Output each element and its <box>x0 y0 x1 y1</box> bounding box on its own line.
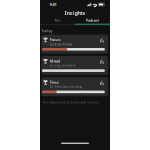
staticText: Feeling consistent <box>50 64 76 67</box>
staticText: Focus <box>50 37 61 42</box>
button[interactable]: Me <box>40 17 75 24</box>
staticText: Your data is used to personalise insight… <box>42 101 99 104</box>
staticText: 3h 20m listened today <box>50 85 82 89</box>
button[interactable]: Time <box>41 77 108 96</box>
button[interactable]: Focus <box>41 35 108 54</box>
staticText: Podcast <box>85 18 99 23</box>
button[interactable]: Podcast <box>75 17 110 24</box>
button[interactable]: Mood <box>41 56 108 75</box>
staticText: Me <box>54 18 60 23</box>
staticText: Time <box>50 79 59 85</box>
staticText: 9:41 <box>49 2 56 7</box>
staticText: Great work today <box>50 43 72 46</box>
staticText: Today <box>41 28 52 33</box>
staticText: Insights <box>64 9 85 17</box>
staticText: Mood <box>50 58 61 63</box>
